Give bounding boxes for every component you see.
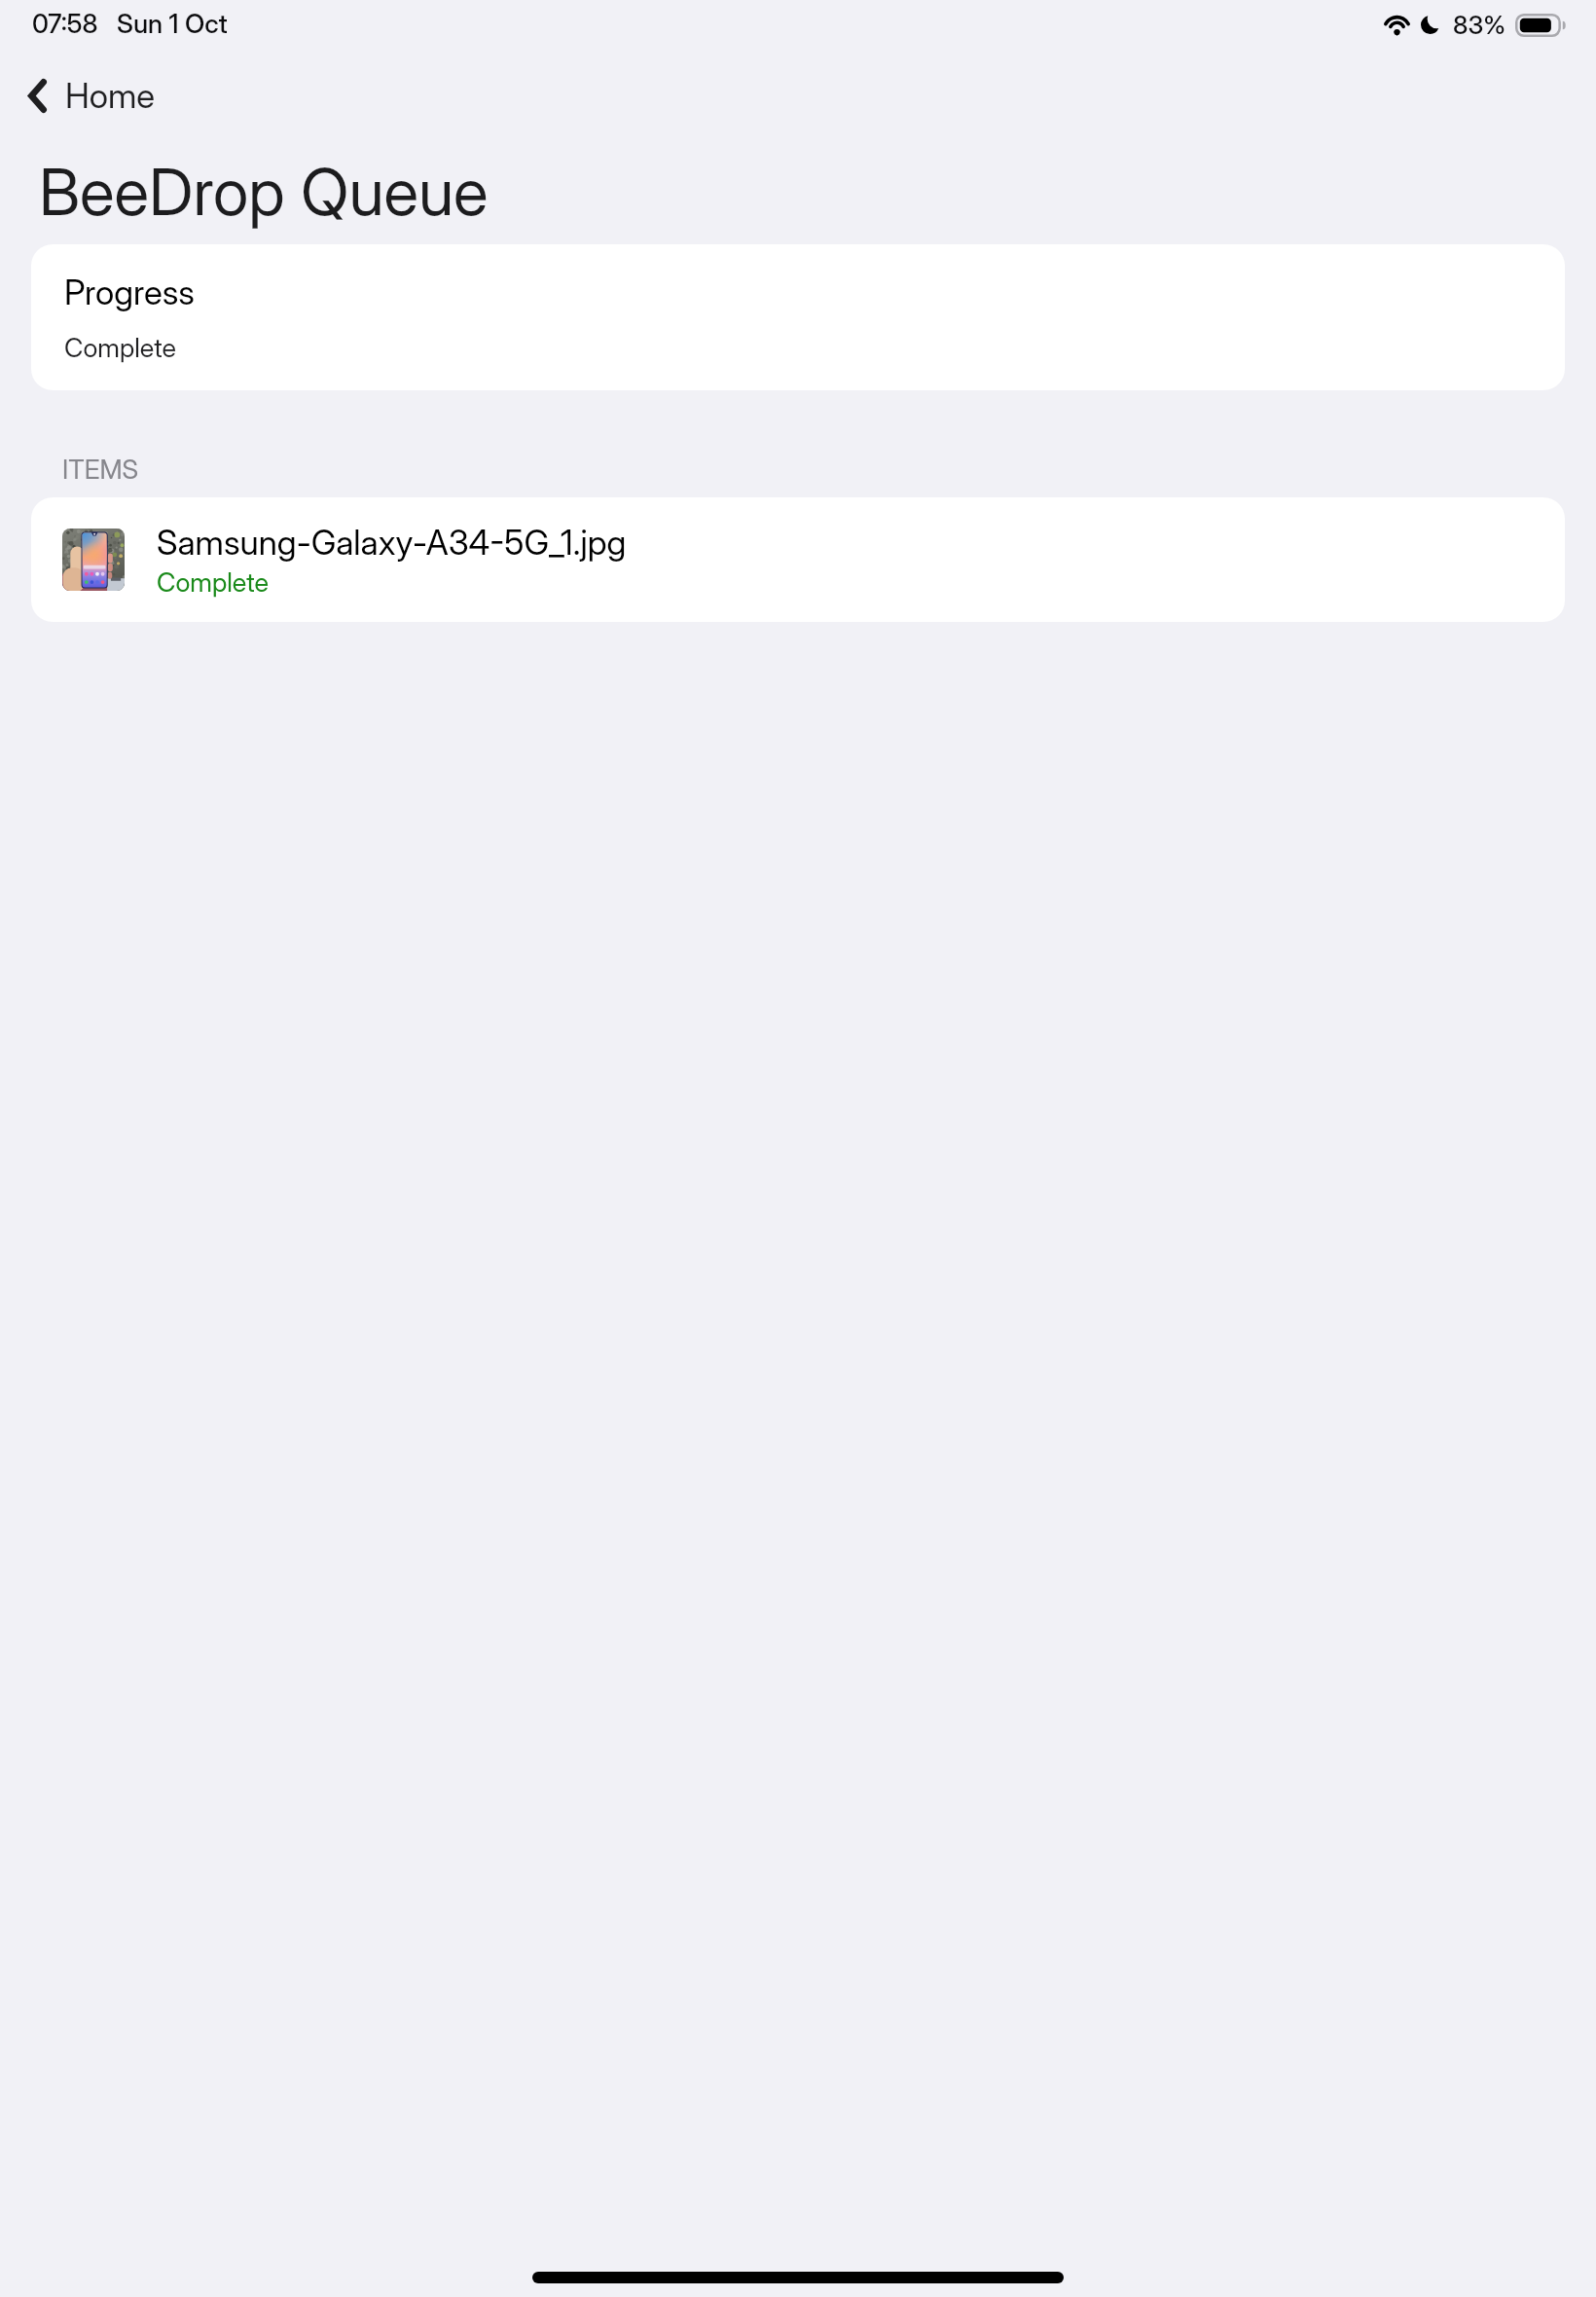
button[interactable]: Progress bbox=[31, 244, 1565, 390]
staticText: ITEMS bbox=[62, 454, 139, 486]
staticText: Complete bbox=[157, 566, 269, 599]
staticText: BeeDrop Queue bbox=[39, 153, 489, 231]
button[interactable]: Back to Home bbox=[15, 67, 175, 124]
staticText: Sun 1 Oct bbox=[117, 8, 228, 40]
button[interactable]: Samsung-Galaxy-A34-5G_1.jpg bbox=[31, 497, 1565, 622]
staticText: Samsung-Galaxy-A34-5G_1.jpg bbox=[157, 522, 627, 563]
staticText: Home bbox=[65, 75, 156, 116]
staticText: Progress bbox=[64, 272, 195, 312]
staticText: Complete bbox=[64, 332, 176, 364]
staticText: 83% bbox=[1453, 10, 1505, 40]
staticText: 07:58 bbox=[32, 8, 98, 40]
